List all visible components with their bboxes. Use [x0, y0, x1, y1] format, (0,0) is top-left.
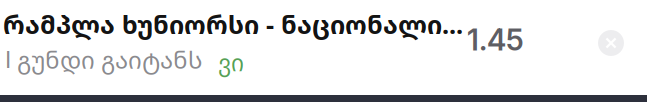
staticText: I [5, 45, 11, 74]
staticText: ვი [218, 47, 244, 78]
staticText: გუნდი გაიტანს [11, 43, 203, 76]
button[interactable]: Remove selection [598, 30, 624, 56]
staticText: 1.45 [467, 22, 524, 57]
staticText: რამპლა ხუნიორსი - ნაციონალი... [3, 7, 463, 41]
